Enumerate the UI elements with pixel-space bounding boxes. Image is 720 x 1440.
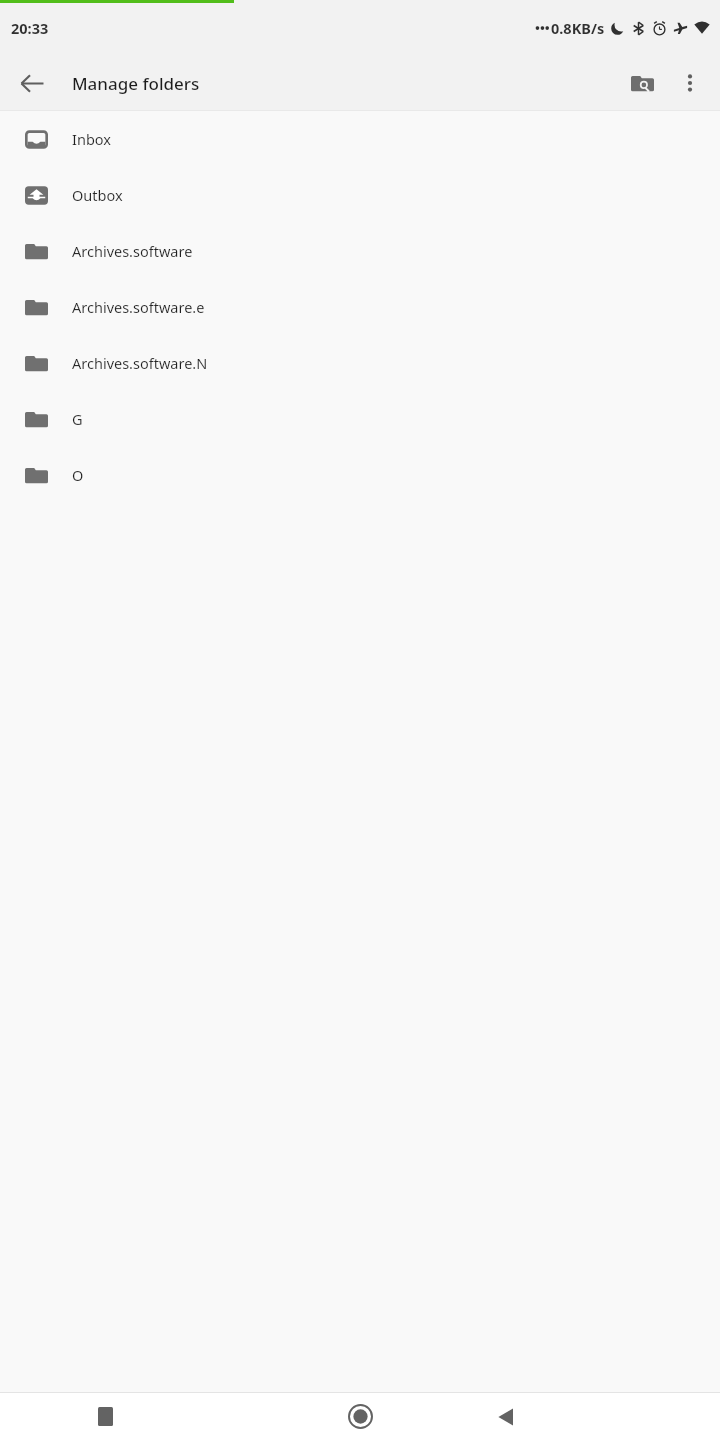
button[interactable]: Back <box>482 1393 530 1440</box>
staticText: Archives.software.e <box>72 297 205 317</box>
button[interactable]: Outbox <box>0 167 720 223</box>
staticText: ••• <box>535 19 550 37</box>
button[interactable]: Archives.software <box>0 223 720 279</box>
staticText: 0.8KB/s <box>551 18 605 38</box>
button[interactable]: Archives.software.N <box>0 335 720 391</box>
button[interactable]: More options <box>666 59 714 107</box>
button[interactable]: Back <box>8 59 56 107</box>
button[interactable]: Search folders <box>618 59 666 107</box>
staticText: Inbox <box>72 129 111 149</box>
button[interactable]: Archives.software.e <box>0 279 720 335</box>
button[interactable]: O <box>0 447 720 503</box>
staticText: O <box>72 465 84 485</box>
staticText: G <box>72 409 83 429</box>
staticText: Archives.software.N <box>72 353 208 373</box>
staticText: Outbox <box>72 185 123 205</box>
button[interactable]: G <box>0 391 720 447</box>
staticText: Archives.software <box>72 241 193 261</box>
button[interactable]: Inbox <box>0 111 720 167</box>
button[interactable]: Recents <box>81 1393 129 1440</box>
button[interactable]: Home <box>336 1393 384 1440</box>
staticText: 20:33 <box>11 18 49 38</box>
staticText: Manage folders <box>72 72 200 95</box>
